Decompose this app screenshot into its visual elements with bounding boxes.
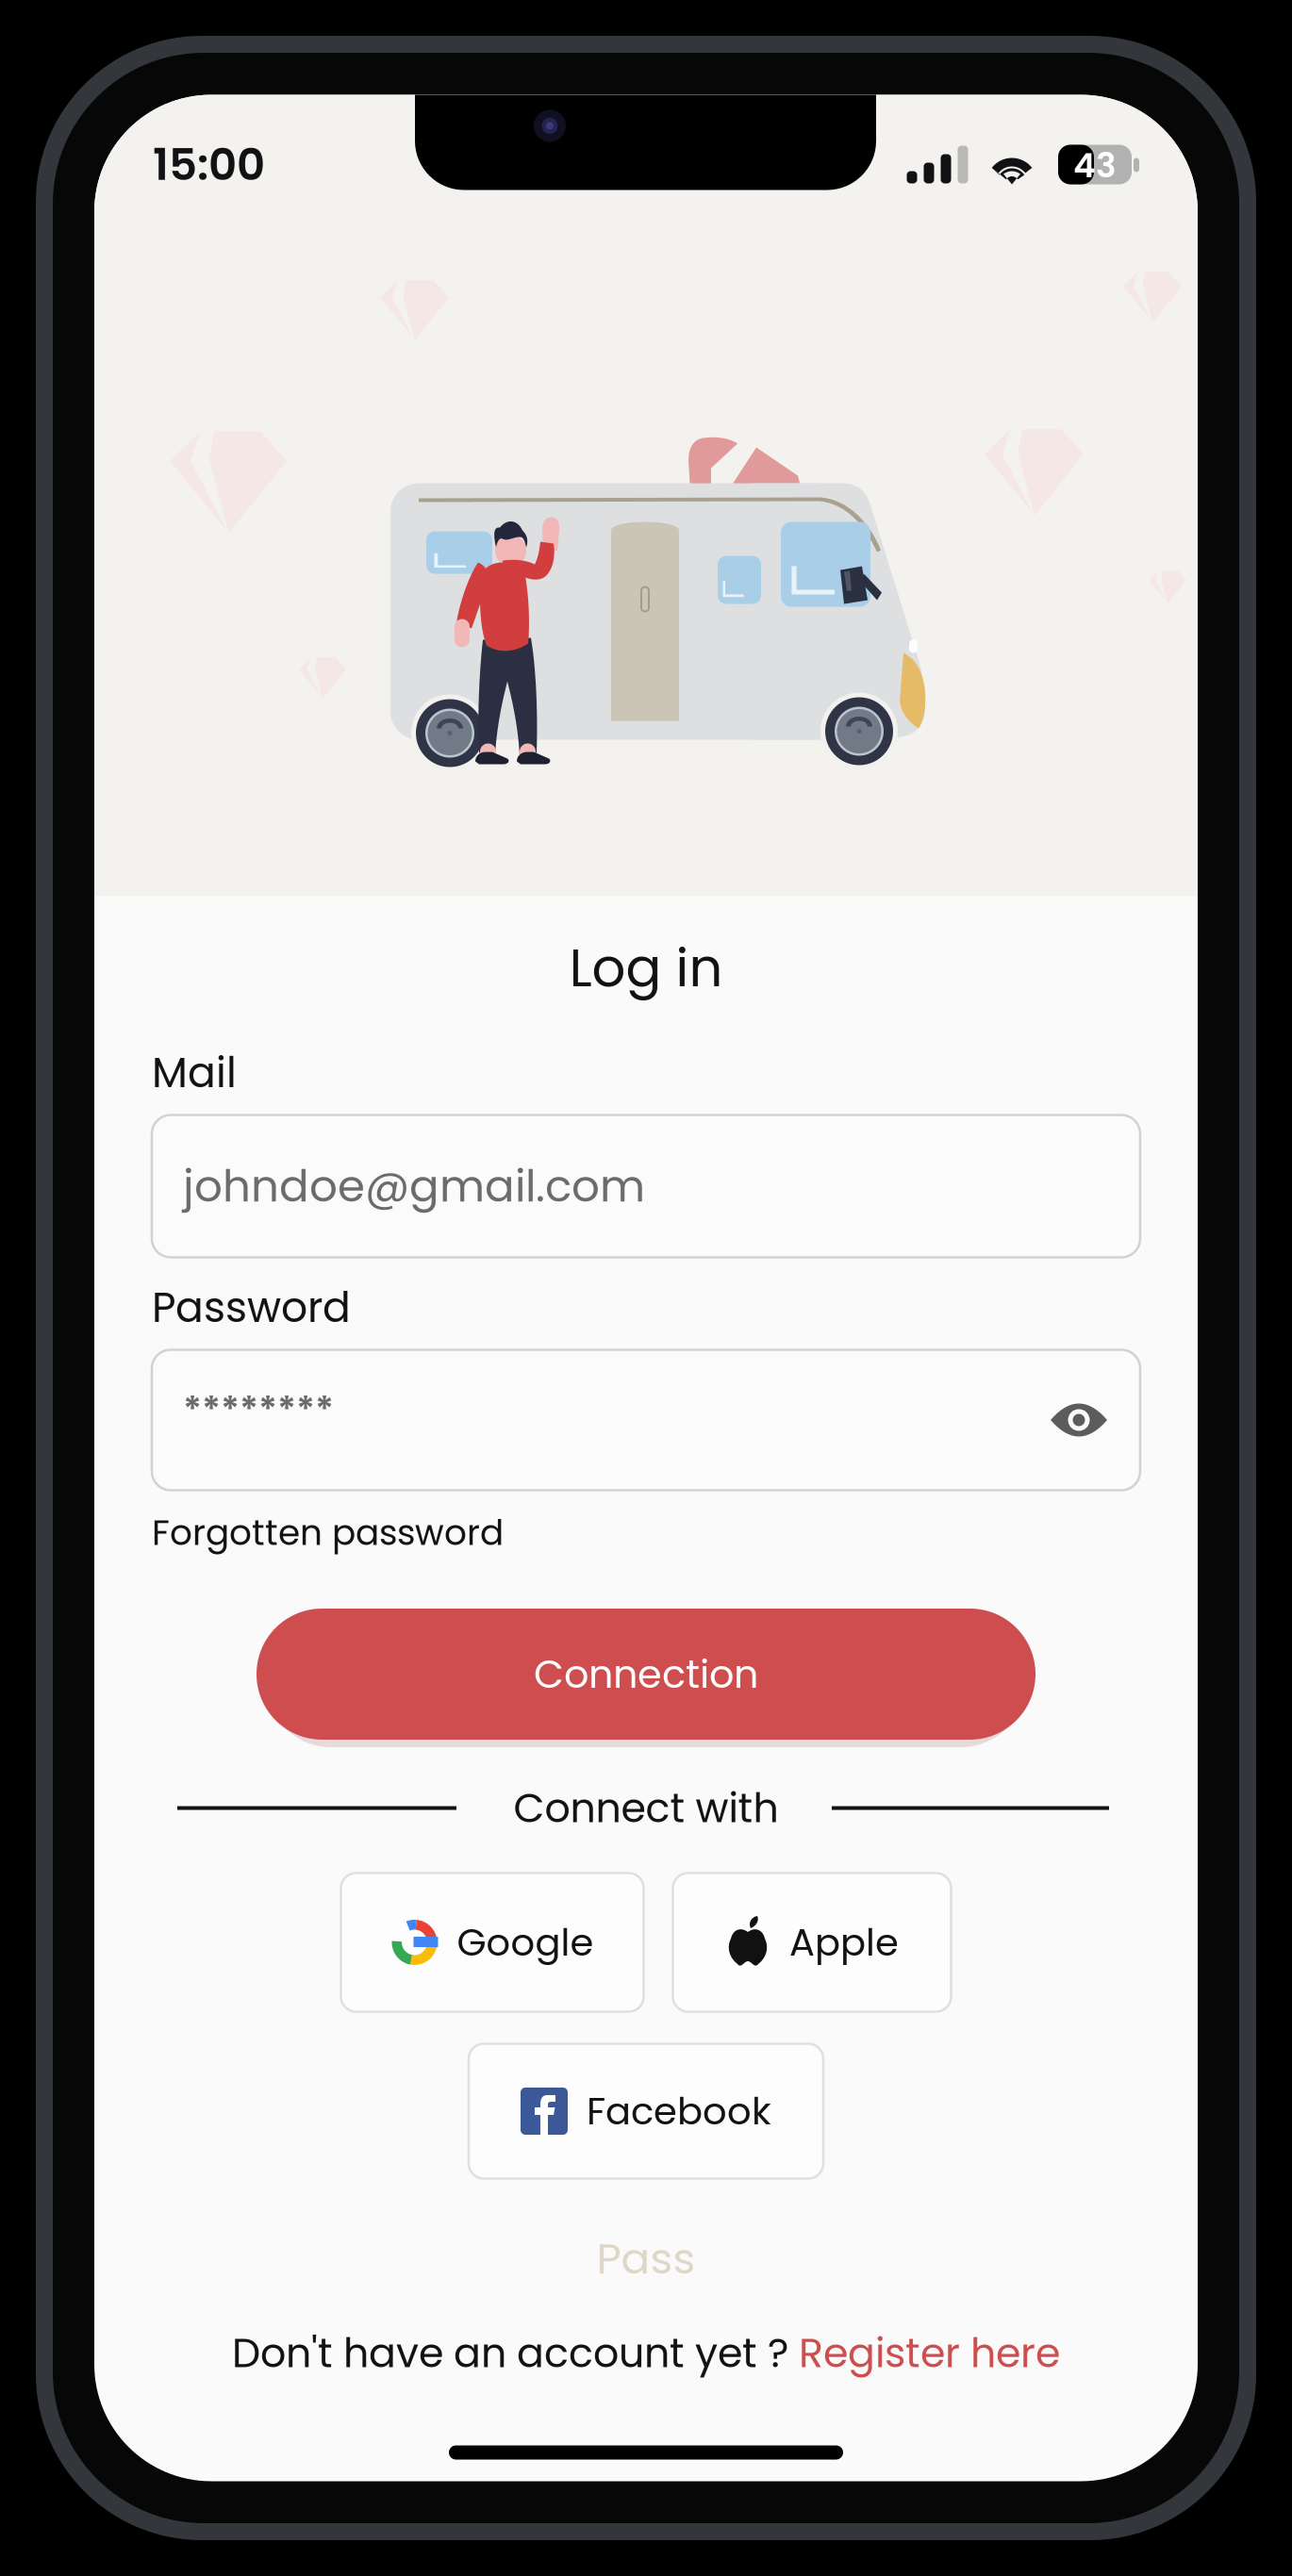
staticText: Facebook xyxy=(587,2085,771,2138)
button[interactable]: Apple xyxy=(673,1873,951,2012)
staticText: Apple xyxy=(789,1916,899,1969)
button[interactable]: Show password xyxy=(1049,1399,1109,1441)
staticText: Forgotten password xyxy=(152,1508,504,1557)
button[interactable]: Google xyxy=(341,1873,644,2012)
button[interactable]: Connection xyxy=(257,1596,1035,1747)
staticText: ******** xyxy=(183,1384,334,1435)
button[interactable]: Forgotten password xyxy=(152,1508,642,1557)
staticText: Connection xyxy=(534,1647,758,1701)
staticText: Google xyxy=(457,1916,594,1969)
staticText: Don't have an account yet ? xyxy=(232,2325,799,2381)
staticText: johndoe@gmail.com xyxy=(183,1155,645,1217)
staticText: 15:00 xyxy=(153,134,265,195)
staticText: 43 xyxy=(1073,142,1117,189)
staticText: Connect with xyxy=(513,1780,779,1836)
button[interactable]: johndoe@gmail.com xyxy=(152,1115,1140,1257)
staticText: Register here xyxy=(799,2325,1060,2381)
button[interactable]: ******** xyxy=(152,1350,1140,1490)
button[interactable]: Facebook xyxy=(469,2044,823,2179)
button[interactable]: Register here xyxy=(799,2325,1060,2381)
staticText: Log in xyxy=(569,931,723,1005)
staticText: Mail xyxy=(152,1044,237,1102)
staticText: Password xyxy=(152,1278,351,1336)
button[interactable]: Pass xyxy=(94,2229,1198,2289)
staticText: Pass xyxy=(596,2229,696,2289)
